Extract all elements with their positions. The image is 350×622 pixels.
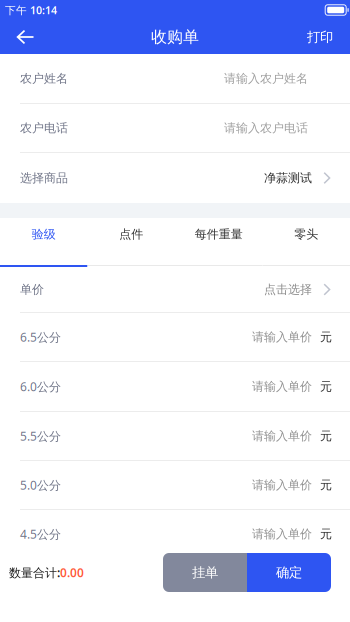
button[interactable]: 挂单 [163,553,247,592]
staticText: 请输入单价 [252,429,312,443]
staticText: 请输入单价 [252,330,312,344]
staticText: 农户姓名 [20,71,68,86]
staticText: 请输入农户姓名 [224,71,308,86]
staticText: 打印 [307,29,333,45]
staticText: 元 [320,330,332,344]
staticText: 下午 10:14 [5,3,57,17]
button[interactable]: 点件 [87,218,175,267]
staticText: 点件 [119,227,143,242]
staticText: 确定 [276,564,302,581]
staticText: 元 [320,379,332,394]
staticText: 请输入农户电话 [224,121,308,135]
button[interactable]: 农户电话 [0,104,350,152]
button[interactable]: 返回 [0,20,49,54]
staticText: 元 [320,429,332,443]
button[interactable]: 单价 [0,267,350,312]
staticText: 净蒜测试 [264,171,312,185]
button[interactable]: 农户姓名 [0,54,350,103]
staticText: 请输入单价 [252,379,312,394]
staticText: 农户电话 [20,121,68,135]
staticText: 单价 [20,282,44,297]
button[interactable]: 6.5公分 [0,313,350,361]
staticText: 5.5公分 [20,428,61,444]
staticText: 零头 [294,227,318,242]
staticText: 点击选择 [264,282,312,297]
staticText: 请输入单价 [252,527,312,541]
button[interactable]: 选择商品 [0,153,350,203]
staticText: 收购单 [151,27,199,47]
staticText: 每件重量 [195,227,243,242]
staticText: 请输入单价 [252,478,312,492]
staticText: 5.0公分 [20,477,61,493]
button[interactable]: 确定 [247,553,331,592]
staticText: 6.0公分 [20,378,61,394]
staticText: 元 [320,478,332,492]
staticText: 数量合计: [9,564,60,580]
staticText: 4.5公分 [20,526,61,542]
button[interactable]: 6.0公分 [0,362,350,411]
staticText: 6.5公分 [20,329,61,345]
button[interactable]: 零头 [262,218,350,267]
button[interactable]: 5.5公分 [0,412,350,460]
button[interactable]: 每件重量 [175,218,262,267]
button[interactable]: 打印 [293,20,350,54]
button[interactable]: 5.0公分 [0,461,350,509]
staticText: 0.00 [60,564,84,580]
button[interactable]: 4.5公分 [0,510,350,558]
staticText: 挂单 [192,564,218,581]
staticText: 验级 [32,227,56,242]
staticText: 元 [320,527,332,541]
button[interactable]: 验级 [0,218,87,267]
staticText: 选择商品 [20,171,68,185]
